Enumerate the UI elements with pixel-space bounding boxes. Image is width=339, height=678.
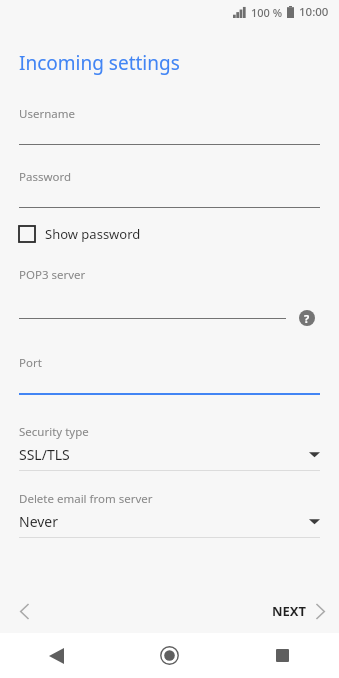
button[interactable]: Back xyxy=(0,589,48,633)
button[interactable]: Show password xyxy=(0,221,339,247)
staticText: SSL/TLS xyxy=(19,445,309,464)
staticText: NEXT xyxy=(272,602,307,620)
button[interactable]: Password xyxy=(0,157,339,208)
button[interactable]: Username xyxy=(0,94,339,145)
button[interactable]: Home xyxy=(113,633,226,678)
staticText: Security type xyxy=(19,424,89,440)
staticText: Incoming settings xyxy=(19,50,180,76)
staticText: Show password xyxy=(45,225,141,243)
button[interactable]: Delete email from server xyxy=(0,479,339,538)
staticText: Port xyxy=(19,355,42,371)
staticText: Password xyxy=(19,169,72,185)
staticText: Never xyxy=(19,512,309,531)
staticText: POP3 server xyxy=(19,267,86,283)
staticText: Username xyxy=(19,106,75,122)
staticText: 10:00 xyxy=(299,4,329,20)
button[interactable]: Port xyxy=(0,343,339,395)
button[interactable]: POP3 server xyxy=(0,255,339,331)
button[interactable]: NEXT xyxy=(258,589,339,633)
staticText: ? xyxy=(304,311,310,326)
button[interactable]: Recent apps xyxy=(226,633,339,678)
button[interactable]: Security type xyxy=(0,412,339,471)
staticText: 100 % xyxy=(251,5,283,20)
button[interactable]: Help xyxy=(294,305,320,331)
button[interactable]: Back xyxy=(0,633,113,678)
staticText: Delete email from server xyxy=(19,491,153,507)
